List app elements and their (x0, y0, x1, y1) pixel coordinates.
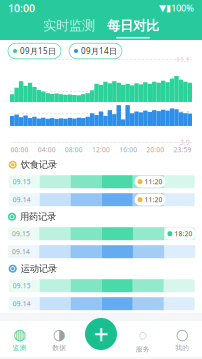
staticText: 20:00 (146, 145, 164, 154)
staticText: 16:00 (119, 145, 137, 154)
button[interactable]: ◌ (123, 321, 162, 357)
staticText: 每日对比 (107, 18, 159, 34)
button[interactable]: 运动记录 (1, 261, 202, 277)
staticText: 09.14 (12, 247, 30, 256)
staticText: 09.14 (13, 195, 31, 204)
staticText: 09.15 (13, 177, 31, 186)
button[interactable]: 09月14日 (69, 43, 122, 59)
staticText: 10:00 (8, 1, 35, 15)
button[interactable]: 09.15 (1, 173, 202, 191)
button[interactable]: 添加记录 (85, 316, 117, 352)
button[interactable]: ○ (162, 321, 202, 357)
button[interactable]: 实时监测 (37, 17, 101, 39)
button[interactable]: 09.14 (1, 191, 202, 209)
staticText: 09.14 (13, 299, 31, 308)
staticText: ▼ (159, 3, 166, 13)
staticText: 23:59 (173, 145, 191, 154)
staticText: ◑ (53, 326, 66, 343)
staticText: 数据 (52, 344, 66, 352)
staticText: 100% (171, 2, 194, 14)
button[interactable]: ◑ (39, 321, 79, 357)
staticText: 服务 (136, 345, 150, 353)
button[interactable]: 每日对比 (101, 18, 165, 38)
staticText: ◌ (138, 325, 147, 344)
staticText: 6.1 (180, 109, 190, 118)
staticText: 12:00 (92, 145, 110, 154)
staticText: 09.15 (13, 281, 31, 290)
button[interactable]: 饮食记录 (1, 157, 202, 173)
button[interactable]: 09月15日 (8, 43, 61, 59)
button[interactable]: 用药记录 (0, 209, 202, 225)
staticText: 用药记录 (20, 211, 56, 222)
button[interactable]: 09.15 (0, 225, 202, 243)
staticText: 3.9 (180, 138, 190, 147)
staticText: 监测 (13, 344, 27, 352)
button[interactable]: 09.14 (1, 295, 202, 313)
staticText: 7.8 (180, 87, 190, 96)
staticText: 运动记录 (21, 263, 57, 274)
staticText: 11:20 (144, 195, 162, 204)
staticText: ◍ (13, 326, 26, 343)
button[interactable]: 09.14 (0, 243, 202, 261)
staticText: 18:20 (174, 229, 192, 238)
staticText: 11.1 (176, 55, 190, 64)
staticText: 饮食记录 (21, 159, 57, 170)
staticText: 00:00 (11, 145, 29, 154)
staticText: 04:00 (38, 145, 56, 154)
staticText: 我的 (175, 344, 189, 352)
staticText: + (93, 316, 108, 352)
staticText: 11:20 (144, 177, 162, 186)
button[interactable]: 09.15 (1, 277, 202, 295)
staticText: 实时监测 (43, 17, 95, 34)
staticText: 09月15日 (20, 46, 56, 56)
staticText: ▮ (166, 3, 171, 13)
staticText: ○ (176, 326, 189, 343)
staticText: 09月14日 (81, 46, 117, 56)
button[interactable]: ◍ (0, 321, 39, 357)
staticText: 09.15 (12, 229, 30, 238)
staticText: 08:00 (65, 145, 83, 154)
